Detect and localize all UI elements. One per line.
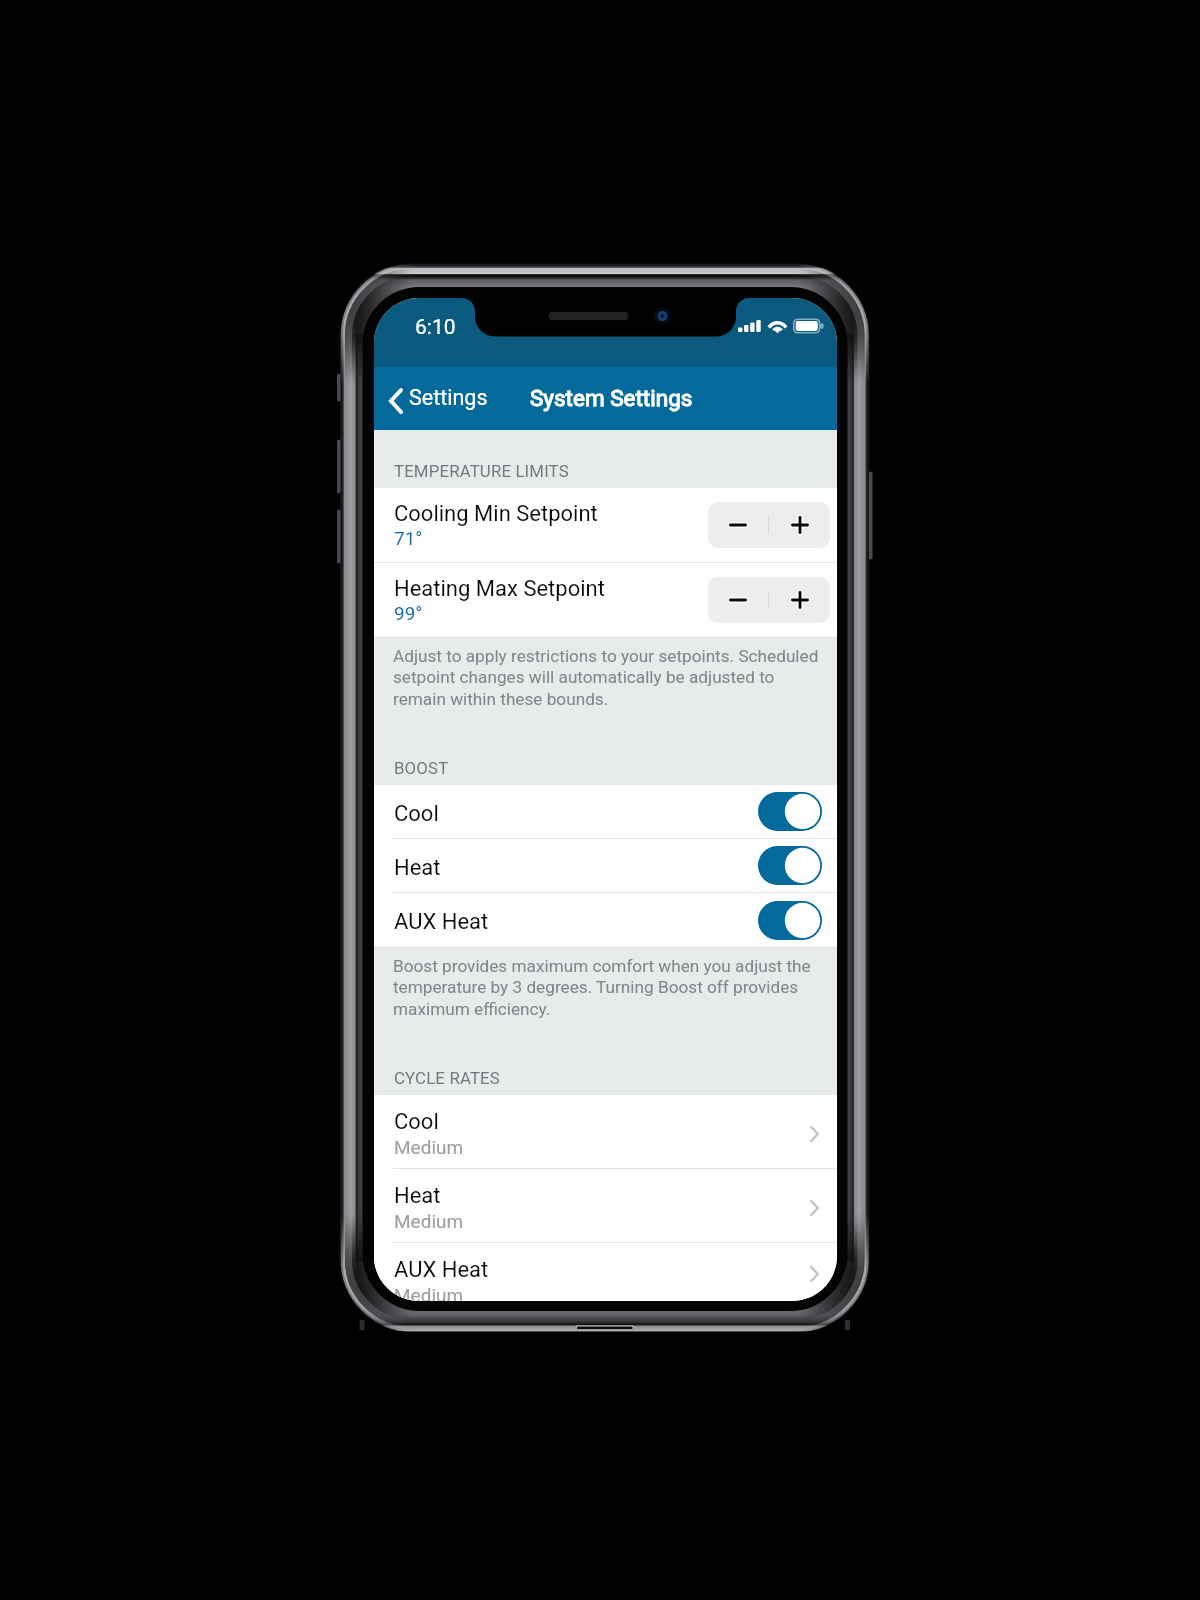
staticText: BOOST bbox=[394, 758, 449, 778]
other: Open bbox=[810, 1266, 819, 1282]
staticText: Heat bbox=[394, 1183, 441, 1209]
staticText: System Settings bbox=[530, 385, 693, 411]
staticText: 71° bbox=[394, 527, 423, 549]
button[interactable]: AUX Heat bbox=[374, 1243, 837, 1301]
other: Open bbox=[810, 1200, 819, 1216]
button[interactable]: Increase bbox=[769, 502, 830, 548]
staticText: AUX Heat bbox=[394, 1257, 489, 1283]
staticText: 99° bbox=[394, 602, 423, 624]
button[interactable]: Heat bbox=[374, 1169, 837, 1242]
staticText: Medium bbox=[394, 1136, 464, 1158]
staticText: Boost provides maximum comfort when you … bbox=[393, 956, 821, 1019]
staticText: Cooling Min Setpoint bbox=[394, 501, 598, 527]
staticText: AUX Heat bbox=[394, 909, 489, 935]
button[interactable]: Heat bbox=[374, 839, 837, 892]
staticText: Settings bbox=[409, 385, 488, 410]
staticText: Medium bbox=[394, 1210, 464, 1232]
button[interactable]: Cool bbox=[374, 1095, 837, 1168]
other: Open bbox=[810, 1126, 819, 1142]
staticText: Heat bbox=[394, 855, 441, 881]
staticText: Medium bbox=[394, 1284, 464, 1301]
staticText: Cool bbox=[394, 1109, 439, 1135]
staticText: 6:10 bbox=[415, 315, 456, 340]
staticText: Cool bbox=[394, 801, 439, 827]
button[interactable]: AUX Heat bbox=[374, 893, 837, 947]
button[interactable]: Settings bbox=[374, 367, 500, 430]
staticText: TEMPERATURE LIMITS bbox=[394, 461, 569, 481]
button[interactable]: Decrease bbox=[708, 577, 768, 623]
staticText: CYCLE RATES bbox=[394, 1068, 500, 1088]
button[interactable]: Decrease bbox=[708, 502, 768, 548]
staticText: Heating Max Setpoint bbox=[394, 576, 605, 602]
staticText: Adjust to apply restrictions to your set… bbox=[393, 646, 821, 709]
button[interactable]: Increase bbox=[769, 577, 830, 623]
button[interactable]: Cool bbox=[374, 785, 837, 838]
